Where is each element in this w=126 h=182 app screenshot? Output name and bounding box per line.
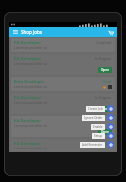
button[interactable]: Open <box>98 106 112 112</box>
button[interactable]: Kit Developer <box>11 139 115 151</box>
staticText: Lorem ipsum dolor sit <box>14 147 47 149</box>
staticText: Kit Developer <box>14 40 41 45</box>
button[interactable]: Kit Developer <box>11 54 115 75</box>
staticText: In Progress <box>95 96 112 100</box>
staticText: Create Job <box>88 107 103 111</box>
staticText: Closed <box>102 142 112 146</box>
button[interactable]: Enable <box>91 122 114 131</box>
button[interactable]: Open <box>98 129 112 135</box>
staticText: Lorem ipsum dolor sit <box>14 101 47 105</box>
button[interactable]: Create Job <box>86 104 114 113</box>
staticText: Open <box>101 107 109 111</box>
staticText: Shop Jobs <box>21 29 43 35</box>
other: Ignore Order <box>107 114 114 121</box>
button[interactable]: Add Reminder <box>80 140 114 149</box>
staticText: Beta Developer <box>14 79 45 84</box>
other: Create Job <box>107 105 114 112</box>
staticText: Kit Developer <box>14 141 41 146</box>
staticText: Open <box>101 68 109 72</box>
staticText: Open <box>101 130 109 134</box>
staticText: Lorem ipsum dolor sit <box>14 62 47 66</box>
button[interactable]: Open <box>98 67 112 73</box>
button[interactable]: Shopping cart <box>106 28 115 37</box>
staticText: Kit Developer <box>14 56 41 61</box>
staticText: Setup <box>94 134 103 138</box>
button[interactable]: Kit Developer <box>11 93 115 114</box>
staticText: In Progress <box>95 57 112 61</box>
button[interactable]: Beta Developer <box>11 77 115 91</box>
staticText: Lorem ipsum dolor sit <box>14 46 47 50</box>
staticText: Closed <box>102 80 112 84</box>
staticText: Lorem ipsum dolor sit <box>14 124 47 128</box>
staticText: Ignore Order <box>84 116 103 120</box>
other: Enable <box>107 123 114 130</box>
button[interactable]: Ignore Order <box>82 113 114 122</box>
button[interactable]: Kit Developer <box>11 116 115 137</box>
button[interactable]: Setup <box>92 131 114 140</box>
staticText: Kit Developer <box>14 95 41 100</box>
staticText: Kit Developer <box>14 118 41 123</box>
staticText: Completed <box>96 41 112 45</box>
staticText: Lorem ipsum dolor sit <box>14 85 47 89</box>
other: Add Reminder <box>107 141 114 148</box>
button[interactable]: Kit Developer <box>11 38 115 52</box>
other: Setup <box>107 132 114 139</box>
staticText: Add Reminder <box>82 143 103 147</box>
button[interactable]: Open navigation menu <box>11 28 19 36</box>
staticText: Enable <box>93 125 103 129</box>
